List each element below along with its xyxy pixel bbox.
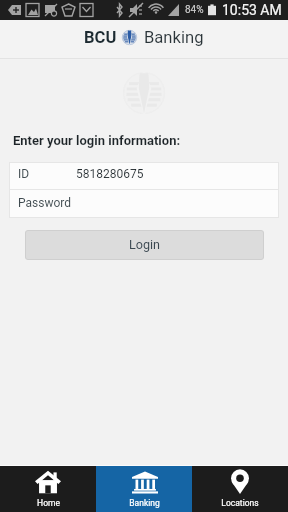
staticText: Banking xyxy=(144,28,204,47)
staticText: BCU xyxy=(84,28,117,47)
staticText: ID xyxy=(18,167,30,181)
button[interactable]: Login xyxy=(25,230,264,260)
button[interactable]: Banking xyxy=(96,466,192,512)
staticText: Banking xyxy=(129,498,160,508)
staticText: 10:53 AM xyxy=(222,2,282,18)
staticText: Locations xyxy=(221,498,259,508)
staticText: Login xyxy=(129,237,161,252)
staticText: Enter your login information: xyxy=(13,133,181,148)
button[interactable]: Home xyxy=(0,466,96,512)
button[interactable]: Password xyxy=(9,190,279,218)
staticText: 84% xyxy=(185,4,204,16)
staticText: 5818280675 xyxy=(76,167,144,181)
staticText: Home xyxy=(37,498,60,508)
staticText: Password xyxy=(18,196,72,210)
button[interactable]: Locations xyxy=(192,466,288,512)
button[interactable]: ID xyxy=(9,162,279,189)
